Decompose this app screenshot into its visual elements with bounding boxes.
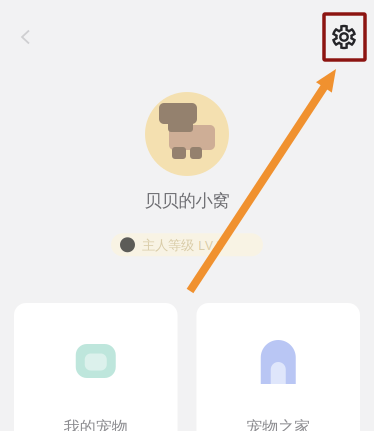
button[interactable]: 我的宠物: [14, 303, 177, 431]
staticText: 主人等级 LV.3: [142, 236, 224, 254]
staticText: 贝贝的小窝: [144, 190, 229, 211]
staticText: 宠物之家: [246, 417, 310, 431]
button[interactable]: Settings: [315, 12, 374, 62]
button[interactable]: 宠物之家: [196, 303, 360, 431]
staticText: 我的宠物: [64, 417, 128, 431]
button[interactable]: Back: [0, 14, 47, 59]
